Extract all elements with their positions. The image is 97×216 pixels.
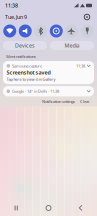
staticText: 11:38 [5, 2, 18, 9]
staticText: Devices [15, 42, 35, 49]
button[interactable]: Recents [0, 200, 32, 216]
staticText: Notification settings [42, 99, 75, 104]
staticText: Media [64, 42, 79, 49]
button[interactable]: Bluetooth [34, 24, 47, 37]
staticText: Tue, Jun 9 [5, 13, 27, 21]
button[interactable]: Samsung capture [3, 61, 94, 84]
button[interactable]: Flashlight [81, 24, 94, 37]
staticText: Google · 14° in Delhi · 11:38 [12, 89, 59, 94]
button[interactable]: Clear [77, 97, 93, 106]
button[interactable]: Sound [19, 24, 32, 37]
button[interactable]: Airplane mode [65, 24, 78, 37]
staticText: Tap here to view it in Gallery [6, 77, 55, 82]
button[interactable]: Back [65, 200, 97, 216]
staticText: Samsung capture [12, 63, 42, 68]
button[interactable]: Auto rotate [50, 24, 63, 37]
button[interactable]: Wi-Fi [3, 24, 16, 37]
staticText: Screenshot saved [6, 69, 50, 76]
button[interactable]: Media [50, 41, 94, 50]
button[interactable]: Devices [3, 41, 47, 50]
staticText: Clear [80, 99, 90, 104]
button[interactable]: Settings [82, 12, 92, 22]
button[interactable]: Notification settings [40, 97, 77, 106]
button[interactable]: Google · 14° in Delhi · 11:38 [3, 86, 94, 96]
staticText: 11:38 [76, 63, 85, 68]
button[interactable]: Home [32, 200, 65, 216]
staticText: Silent notifications [6, 54, 36, 59]
